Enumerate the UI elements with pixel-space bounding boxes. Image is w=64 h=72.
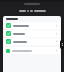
button[interactable] — [4, 22, 60, 29]
button[interactable] — [4, 47, 60, 54]
button[interactable]: Side action — [60, 40, 64, 49]
button[interactable] — [4, 30, 60, 37]
button[interactable] — [4, 38, 60, 45]
button[interactable] — [24, 3, 40, 5]
